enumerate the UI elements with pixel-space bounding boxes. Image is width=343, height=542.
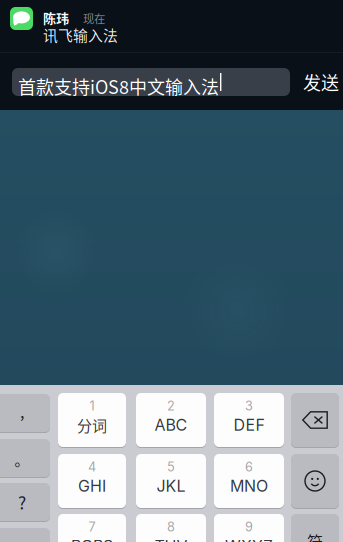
button[interactable]: 3 xyxy=(214,393,284,447)
button[interactable]: 。 xyxy=(0,439,50,477)
staticText: MNO xyxy=(230,476,268,496)
staticText: TUV xyxy=(154,536,187,542)
staticText: 3 xyxy=(245,398,253,414)
staticText: DEF xyxy=(233,415,264,435)
button[interactable]: , xyxy=(0,394,50,432)
staticText: 4 xyxy=(88,459,96,475)
staticText: 。 xyxy=(14,448,29,470)
button[interactable]: Emoji keyboard xyxy=(291,454,339,508)
staticText: JKL xyxy=(156,476,185,496)
button[interactable]: 9 xyxy=(214,514,284,542)
staticText: 7 xyxy=(88,519,95,535)
button[interactable]: 6 xyxy=(214,454,284,508)
staticText: 9 xyxy=(245,519,253,535)
button[interactable]: 2 xyxy=(136,393,206,447)
button[interactable]: 符 xyxy=(291,514,339,542)
button[interactable]: 4 xyxy=(58,454,126,508)
button[interactable]: 1 xyxy=(58,393,126,447)
staticText: 符 xyxy=(307,529,323,542)
staticText: 8 xyxy=(167,519,175,535)
button[interactable]: Backspace xyxy=(291,393,339,447)
button[interactable]: 5 xyxy=(136,454,206,508)
staticText: ABC xyxy=(154,415,187,435)
button[interactable]: 8 xyxy=(136,514,206,542)
staticText: 现在 xyxy=(83,10,105,26)
button[interactable]: ? xyxy=(0,483,50,521)
staticText: WXYZ xyxy=(225,536,273,542)
staticText: , xyxy=(20,399,24,423)
staticText: ? xyxy=(18,489,26,515)
button[interactable]: 发送 xyxy=(299,68,343,96)
button[interactable]: 7 xyxy=(58,514,126,542)
staticText: 6 xyxy=(245,459,253,475)
staticText: 1 xyxy=(89,398,94,414)
staticText: PQRS xyxy=(71,536,113,542)
staticText: 讯飞输入法 xyxy=(43,24,118,45)
staticText: 分词 xyxy=(77,414,107,436)
staticText: 2 xyxy=(167,398,175,414)
staticText: 首款支持iOS8中文输入法 xyxy=(18,73,219,99)
staticText: 发送 xyxy=(303,69,339,95)
staticText: 陈玮 xyxy=(43,8,69,27)
staticText: 5 xyxy=(167,459,175,475)
staticText: GHI xyxy=(78,476,106,496)
